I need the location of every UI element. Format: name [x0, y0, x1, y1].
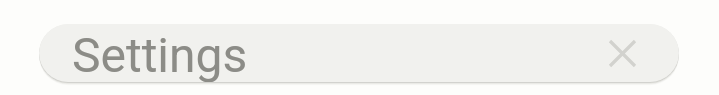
staticText: Settings	[72, 27, 248, 82]
button[interactable]: Settings	[39, 24, 679, 82]
button[interactable]: Clear search	[602, 33, 642, 73]
